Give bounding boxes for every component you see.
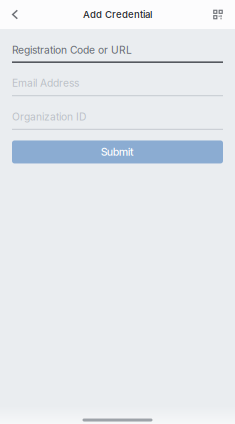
staticText: Submit <box>101 145 134 158</box>
staticText: Add Credential <box>83 9 152 20</box>
staticText: Registration Code or URL <box>12 44 132 56</box>
button[interactable]: Scan QR code <box>207 0 229 29</box>
button[interactable]: Email Address <box>12 63 223 96</box>
button[interactable]: Submit <box>12 140 223 163</box>
button[interactable]: Registration Code or URL <box>12 29 223 63</box>
staticText: Email Address <box>12 77 79 89</box>
button[interactable]: Organization ID <box>12 96 223 130</box>
staticText: Organization ID <box>12 110 86 123</box>
button[interactable]: Back <box>4 0 26 29</box>
